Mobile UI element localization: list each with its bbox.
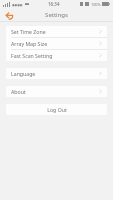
staticText: Fast Scan Setting: [11, 52, 53, 59]
staticText: Array Map Size: [11, 40, 48, 47]
staticText: About: [11, 88, 26, 95]
staticText: Log Out: [47, 106, 67, 113]
staticText: Language: [11, 70, 36, 77]
staticText: ●●●●: [12, 3, 23, 6]
staticText: Set Time Zone: [11, 28, 46, 35]
button[interactable]: About: [6, 86, 107, 97]
staticText: 100%: [91, 2, 101, 7]
button[interactable]: Array Map Size: [6, 38, 107, 49]
button[interactable]: Log Out: [6, 104, 107, 115]
button[interactable]: Language: [6, 68, 107, 79]
button[interactable]: Back: [3, 10, 14, 21]
staticText: Settings: [45, 11, 68, 19]
staticText: 16:34: [48, 1, 60, 7]
button[interactable]: Set Time Zone: [6, 26, 107, 37]
button[interactable]: Fast Scan Setting: [6, 50, 107, 61]
